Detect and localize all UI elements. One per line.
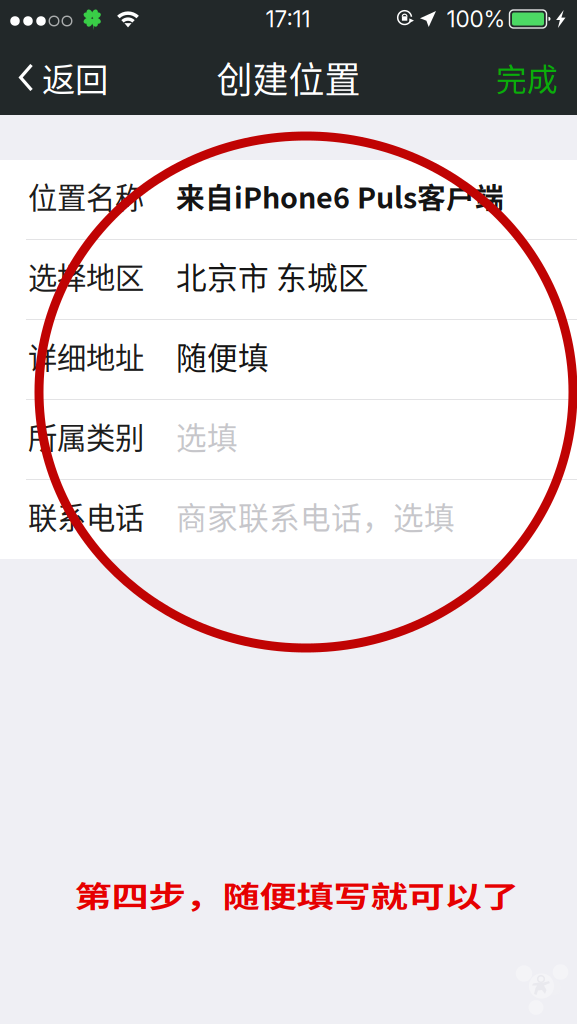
- staticText: 联系电话: [28, 495, 144, 537]
- button[interactable]: 联系电话: [0, 480, 577, 559]
- button[interactable]: 返回: [0, 40, 122, 115]
- staticText: 创建位置: [216, 51, 360, 103]
- button[interactable]: 详细地址: [0, 320, 577, 399]
- staticText: 商家联系电话，选填: [176, 494, 455, 538]
- button[interactable]: 所属类别: [0, 400, 577, 479]
- staticText: 完成: [496, 55, 558, 100]
- staticText: 北京市 东城区: [176, 254, 369, 298]
- staticText: 100%: [446, 5, 505, 33]
- button[interactable]: 位置名称: [0, 160, 577, 239]
- staticText: 详细地址: [28, 335, 144, 377]
- staticText: 第四步，随便填写就可以了: [74, 868, 518, 922]
- staticText: 所属类别: [28, 415, 144, 457]
- staticText: 随便填: [176, 334, 269, 378]
- staticText: 位置名称: [28, 175, 144, 217]
- button[interactable]: 完成: [472, 40, 577, 115]
- button[interactable]: 选择地区: [0, 240, 577, 319]
- staticText: 返回: [42, 53, 108, 102]
- staticText: 来自iPhone6 Puls客户端: [176, 175, 504, 217]
- staticText: 17:11: [265, 5, 310, 33]
- staticText: 选择地区: [28, 255, 144, 297]
- staticText: 选填: [176, 414, 238, 458]
